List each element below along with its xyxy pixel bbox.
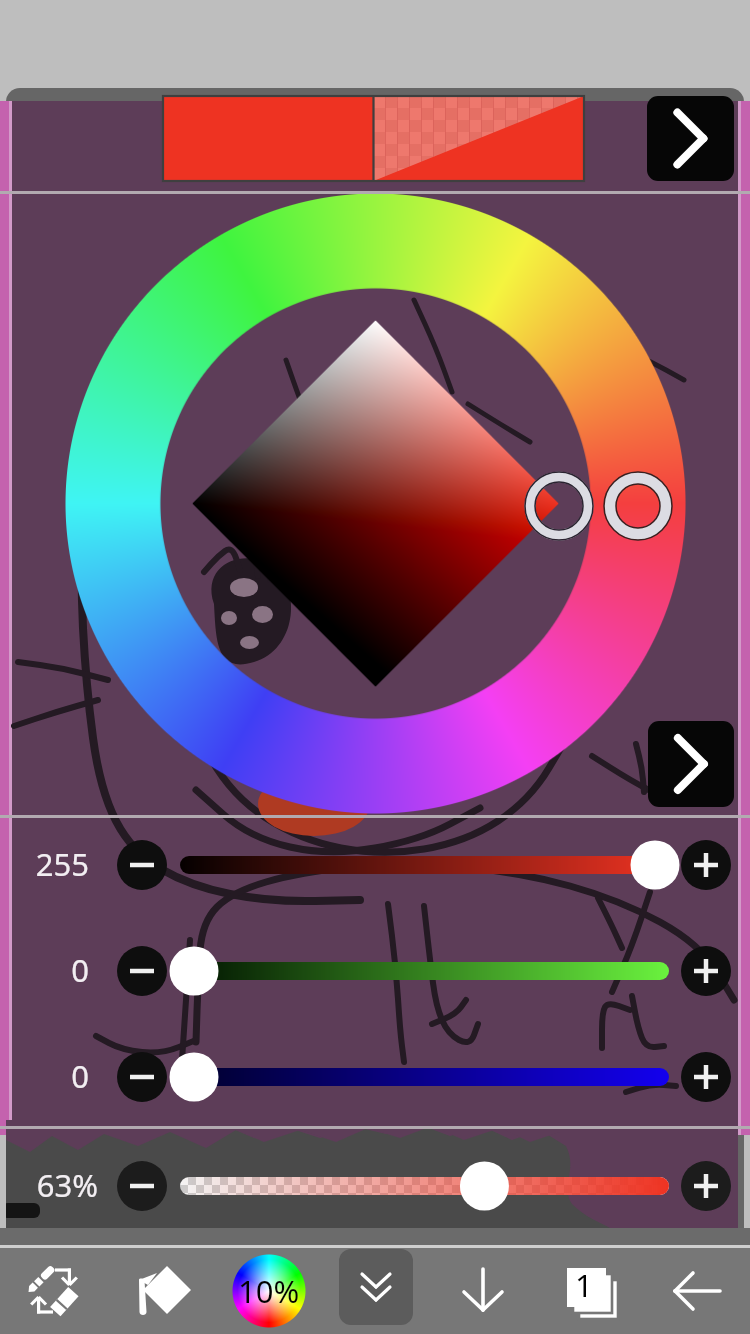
button[interactable]: Back xyxy=(643,1248,750,1334)
staticText: 255 xyxy=(0,843,89,885)
button[interactable]: Swap brush and eraser xyxy=(0,1248,108,1334)
button[interactable]: Color xyxy=(215,1248,322,1334)
button[interactable] xyxy=(163,96,584,181)
button[interactable]: Increase Red xyxy=(681,840,731,890)
button[interactable]: Collapse panel xyxy=(339,1249,413,1325)
button[interactable]: Decrease opacity xyxy=(117,1161,167,1211)
button[interactable]: Increase Green xyxy=(681,946,731,996)
button[interactable]: Red slider xyxy=(180,856,669,874)
button[interactable]: Next palette xyxy=(648,721,734,807)
button[interactable]: Increase Blue xyxy=(681,1052,731,1102)
staticText: 0 xyxy=(0,949,89,991)
button[interactable]: Fill tool xyxy=(108,1248,215,1334)
button[interactable]: Decrease Blue xyxy=(117,1052,167,1102)
button[interactable]: Layers xyxy=(536,1248,643,1334)
staticText: 1 xyxy=(575,1264,593,1306)
button[interactable]: Decrease Red xyxy=(117,840,167,890)
button[interactable]: Decrease Green xyxy=(117,946,167,996)
button[interactable]: Next color xyxy=(647,96,734,181)
button[interactable]: Blue slider xyxy=(180,1068,669,1086)
staticText: 10% xyxy=(238,1270,300,1312)
staticText: 63% xyxy=(0,1164,98,1206)
staticText: 0 xyxy=(0,1055,89,1097)
button[interactable]: Green slider xyxy=(180,962,669,980)
button[interactable]: Color wheel xyxy=(64,194,686,814)
button[interactable]: Opacity slider xyxy=(180,1177,669,1195)
button[interactable]: Increase opacity xyxy=(681,1161,731,1211)
button[interactable]: Import xyxy=(429,1248,536,1334)
